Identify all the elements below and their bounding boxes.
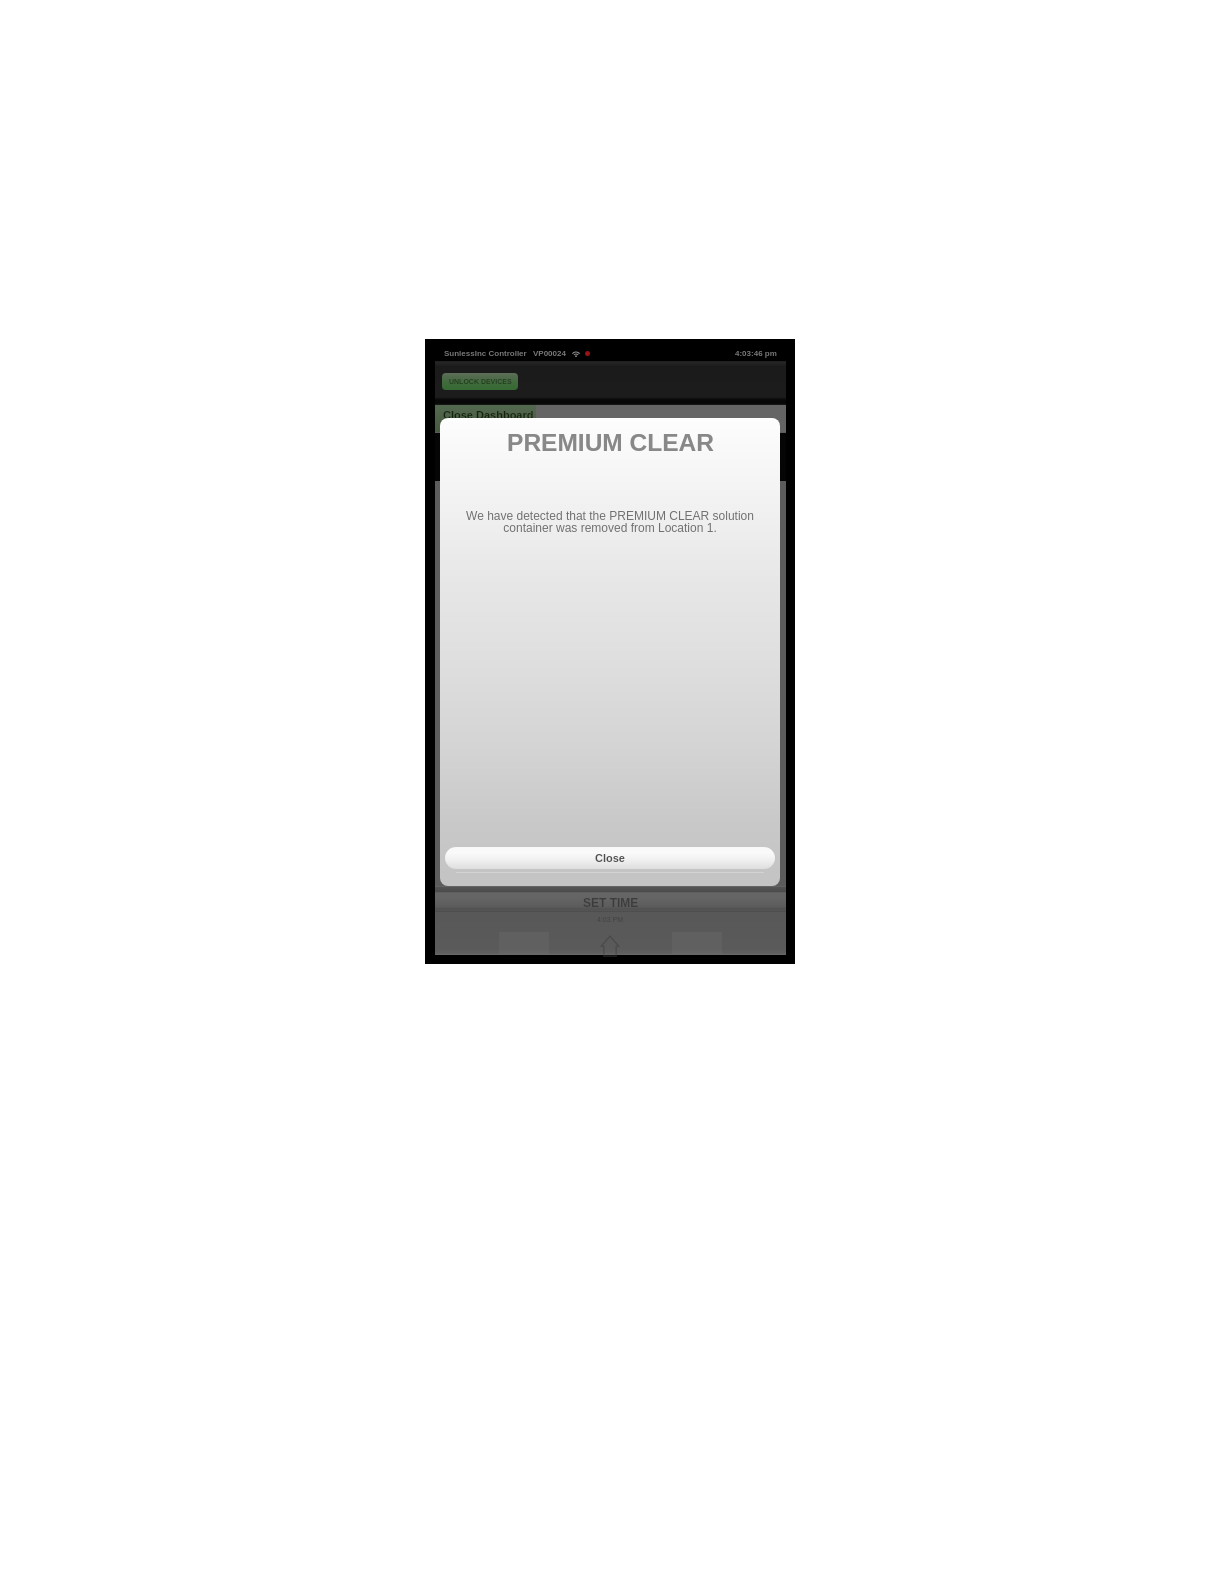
button[interactable]: UNLOCK DEVICES: [442, 373, 518, 390]
button[interactable]: Close: [445, 847, 775, 869]
staticText: UNLOCK DEVICES: [449, 378, 512, 386]
staticText: Close Dashboard: [443, 409, 534, 421]
staticText: 4:03:46 pm: [735, 349, 777, 358]
staticText: SunlessInc Controller: [444, 349, 527, 358]
staticText: PREMIUM CLEAR: [507, 429, 714, 456]
button[interactable]: Close Dashboard: [435, 405, 536, 432]
staticText: Close: [595, 852, 625, 864]
staticText: SET TIME: [583, 896, 639, 909]
staticText: We have detected that the PREMIUM CLEAR …: [462, 509, 758, 535]
staticText: 4:03 PM: [597, 916, 624, 924]
staticText: VP00024: [533, 349, 566, 358]
button[interactable]: Home: [599, 932, 621, 955]
